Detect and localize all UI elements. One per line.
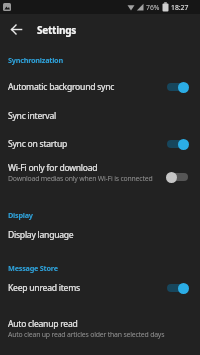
- staticText: Auto cleanup read: [8, 318, 78, 330]
- staticText: Sync on startup: [8, 138, 68, 150]
- staticText: Automatic background sync: [8, 81, 115, 93]
- staticText: 18:27: [171, 3, 189, 12]
- button[interactable]: Sync interval: [0, 101, 200, 130]
- staticText: Settings: [37, 23, 76, 37]
- staticText: Message Store: [8, 263, 58, 273]
- button[interactable]: Auto cleanup read: [0, 301, 200, 341]
- button[interactable]: Automatic background sync: [0, 72, 200, 101]
- staticText: Sync interval: [8, 110, 56, 122]
- staticText: Keep unread items: [8, 282, 80, 294]
- staticText: Download medias only when Wi-Fi is conne…: [8, 174, 153, 183]
- button[interactable]: [11, 24, 22, 35]
- staticText: 76%: [146, 3, 160, 12]
- staticText: Auto clean up read articles older than s…: [8, 330, 165, 339]
- staticText: Display language: [8, 229, 74, 241]
- staticText: Synchronization: [8, 55, 63, 65]
- staticText: Display: [8, 210, 33, 220]
- button[interactable]: Display language: [0, 222, 200, 248]
- button[interactable]: Wi-Fi only for download: [0, 158, 200, 195]
- button[interactable]: Keep unread items: [0, 275, 200, 301]
- staticText: Wi-Fi only for download: [8, 162, 98, 174]
- button[interactable]: Sync on startup: [0, 130, 200, 158]
